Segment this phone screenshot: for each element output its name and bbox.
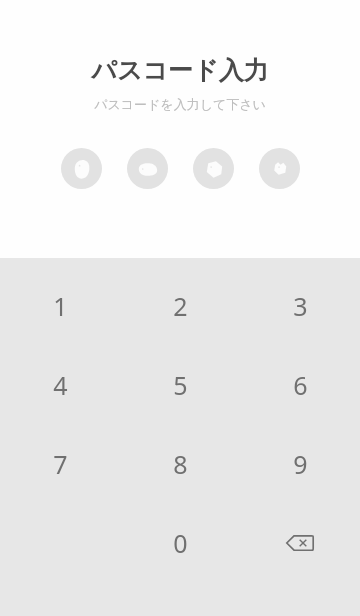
staticText: 4	[53, 368, 68, 402]
button[interactable]: 9	[240, 424, 360, 503]
staticText: 6	[293, 368, 308, 402]
staticText: 0	[173, 526, 188, 560]
button[interactable]: 1	[0, 266, 120, 345]
staticText: 9	[293, 447, 308, 481]
staticText: パスコード入力	[91, 55, 269, 86]
button[interactable]: 3	[240, 266, 360, 345]
button[interactable]: 5	[120, 345, 240, 424]
staticText: 5	[173, 368, 188, 402]
button[interactable]: 7	[0, 424, 120, 503]
staticText: 8	[173, 447, 188, 481]
button[interactable]: Delete	[240, 503, 360, 582]
button[interactable]: 6	[240, 345, 360, 424]
staticText: 2	[173, 289, 188, 323]
button[interactable]: 8	[120, 424, 240, 503]
staticText: 3	[293, 289, 308, 323]
staticText: 1	[53, 289, 68, 323]
button[interactable]: 2	[120, 266, 240, 345]
staticText: パスコードを入力して下さい	[94, 96, 266, 112]
button[interactable]: 0	[120, 503, 240, 582]
button[interactable]: 4	[0, 345, 120, 424]
staticText: 7	[53, 447, 68, 481]
